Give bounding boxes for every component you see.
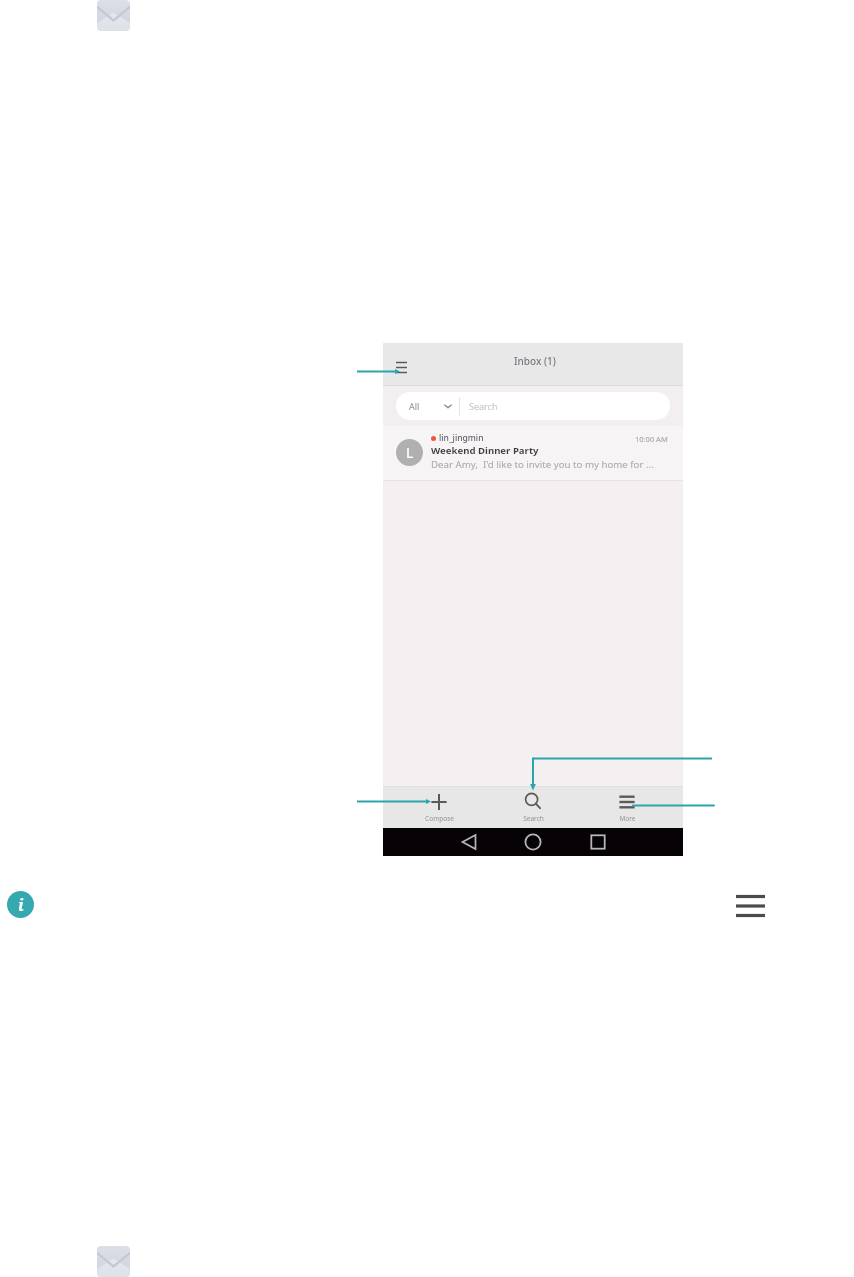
staticText: i [18,894,24,916]
staticText: Compose [425,814,454,823]
button[interactable]: Menu [736,893,765,919]
staticText: Dear Amy, I'd like to invite you to my h… [431,458,654,471]
button[interactable]: Home [520,829,546,855]
button[interactable]: Compose [392,787,486,828]
staticText: lin_jingmin [439,432,484,444]
button[interactable]: Information [7,891,34,918]
button[interactable]: All [396,392,459,420]
staticText: Search [523,814,544,823]
staticText: More [619,814,636,823]
staticText: Inbox (1) [514,354,556,368]
staticText: 10:00 AM [635,434,668,444]
button[interactable]: More [580,787,674,828]
button[interactable]: Recents [585,829,611,855]
staticText: All [409,400,420,412]
button[interactable]: L [383,426,683,480]
staticText: L [406,443,414,462]
staticText: Weekend Dinner Party [431,444,539,457]
button[interactable]: Search [486,787,580,828]
button[interactable]: Back [456,829,482,855]
button[interactable]: Navigation drawer [396,361,407,372]
staticText: Search [469,400,498,412]
